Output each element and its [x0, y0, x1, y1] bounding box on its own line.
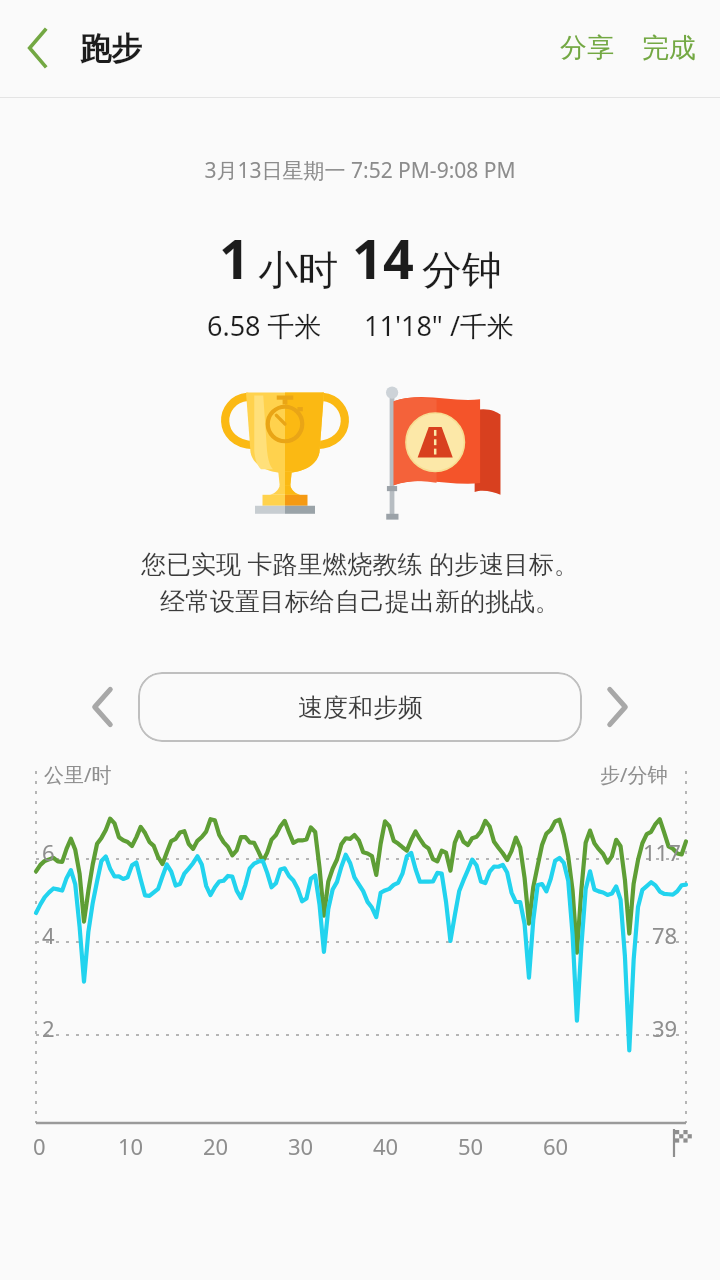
staticText: 经常设置目标给自己提出新的挑战。	[0, 586, 720, 617]
staticText: 4	[42, 920, 55, 950]
staticText: 0	[33, 1131, 46, 1161]
staticText: 40	[373, 1131, 399, 1161]
staticText: 公里/时	[44, 761, 112, 788]
staticText: 10	[118, 1131, 144, 1161]
staticText: 6	[42, 837, 55, 867]
button[interactable]: 速度和步频	[138, 672, 582, 742]
staticText: 1	[219, 221, 250, 295]
staticText: 跑步	[80, 29, 142, 68]
staticText: 117	[643, 837, 681, 867]
staticText: 78	[652, 920, 678, 950]
staticText: 11'18" /千米	[364, 307, 514, 344]
staticText: 14	[352, 221, 414, 295]
staticText: 39	[652, 1013, 678, 1043]
button[interactable]: 下一个图表	[588, 672, 646, 742]
staticText: 分享	[560, 31, 614, 65]
staticText: 6.58 千米	[207, 307, 322, 344]
staticText: 30	[288, 1131, 314, 1161]
staticText: 60	[543, 1131, 569, 1161]
staticText: 50	[458, 1131, 484, 1161]
staticText: 小时	[258, 245, 338, 295]
staticText: 分钟	[422, 245, 502, 295]
button[interactable]: 返回	[8, 18, 68, 78]
button[interactable]: 分享	[546, 19, 628, 77]
staticText: 您已实现 卡路里燃烧教练 的步速目标。	[0, 546, 720, 580]
staticText: 20	[203, 1131, 229, 1161]
staticText: 速度和步频	[298, 692, 423, 723]
staticText: 2	[42, 1013, 55, 1043]
staticText: 3月13日星期一 7:52 PM-9:08 PM	[0, 156, 720, 185]
staticText: 完成	[642, 31, 696, 65]
button[interactable]: 完成	[628, 19, 720, 77]
staticText: 步/分钟	[600, 761, 668, 788]
button[interactable]: 上一个图表	[74, 672, 132, 742]
